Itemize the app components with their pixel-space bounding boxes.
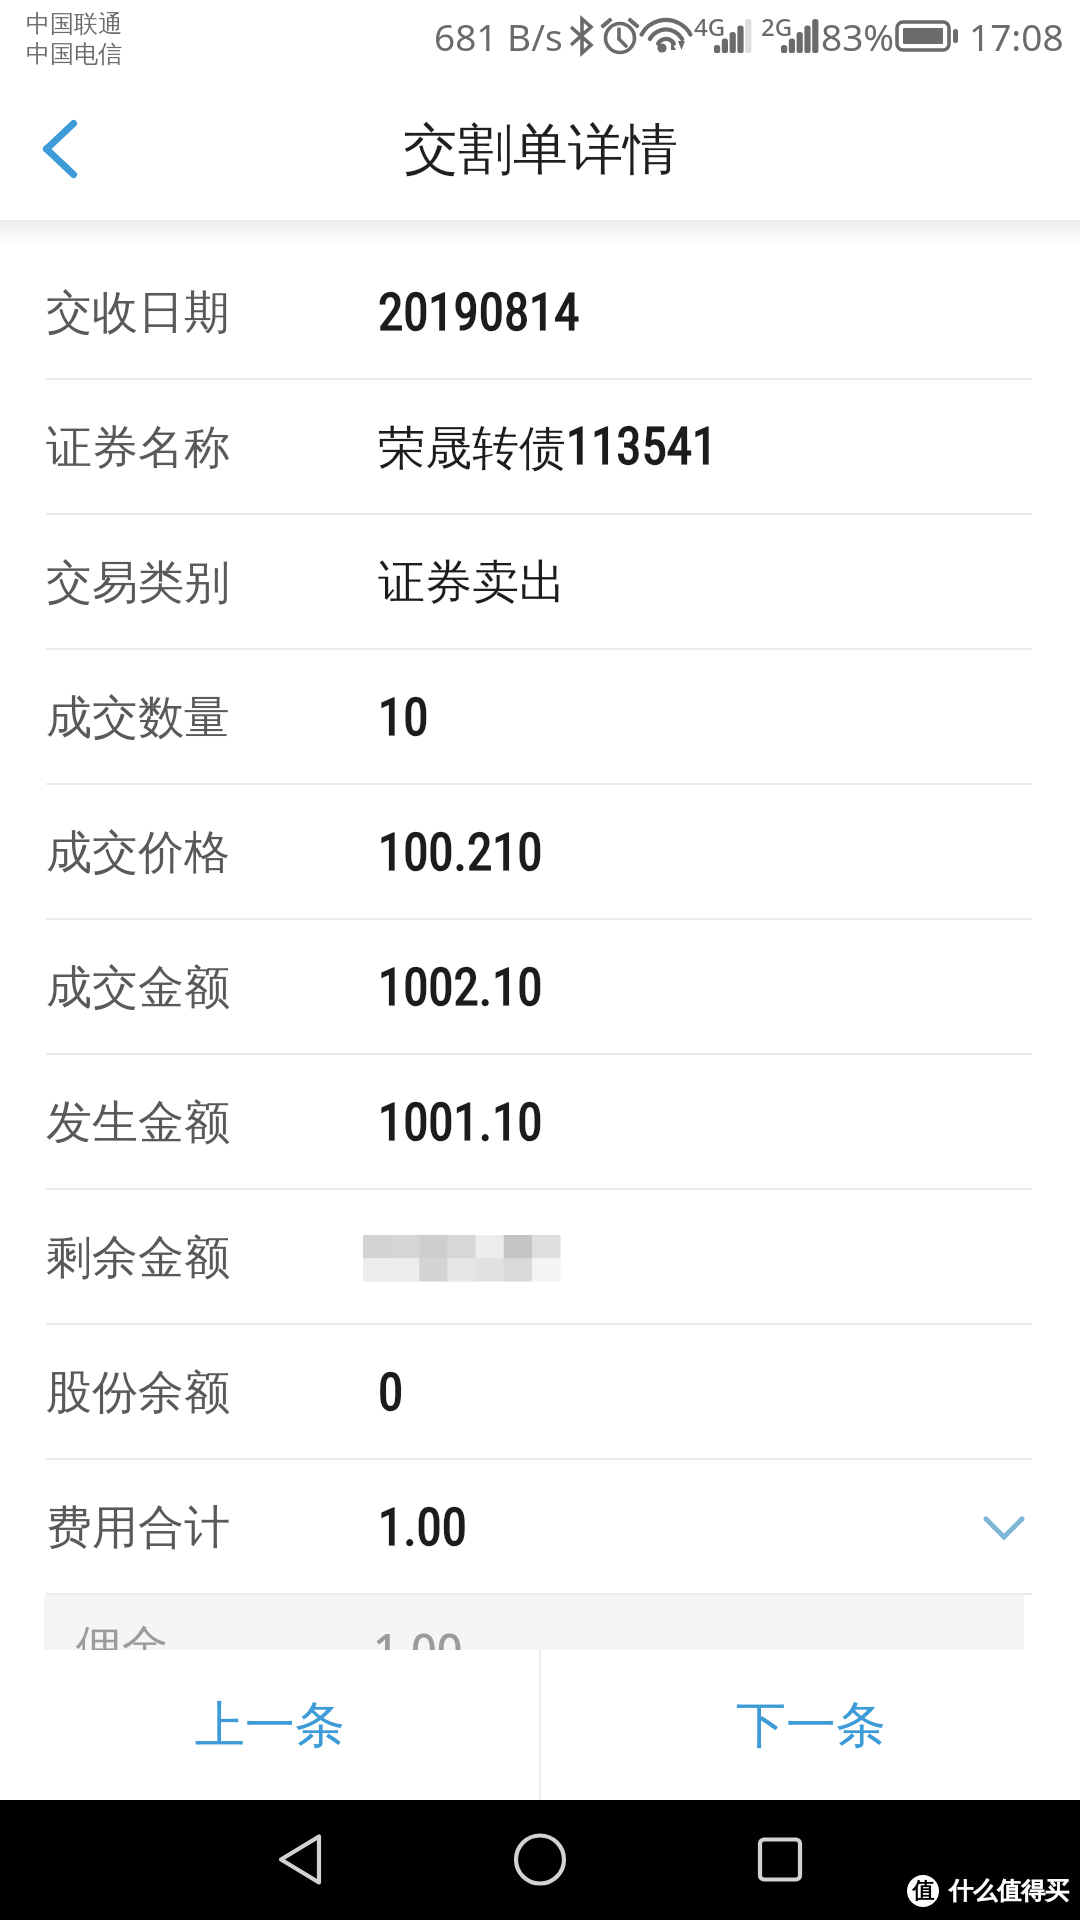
button[interactable]: Home	[499, 1820, 579, 1900]
staticText: 发生金额	[46, 1094, 230, 1152]
staticText: 成交金额	[46, 959, 230, 1017]
staticText: 1.00	[373, 1619, 463, 1674]
button[interactable]: 交易类别	[0, 515, 1080, 650]
staticText: 中国电信	[26, 39, 122, 69]
staticText: 83%	[821, 11, 895, 61]
button[interactable]: 股份余额	[0, 1325, 1080, 1460]
button[interactable]: 交收日期	[0, 245, 1080, 380]
button[interactable]: 证券名称	[0, 380, 1080, 515]
staticText: 中国联通	[26, 9, 122, 39]
button[interactable]: Back	[0, 89, 120, 209]
staticText: 1001.10	[378, 1093, 543, 1153]
staticText: 2G	[761, 10, 793, 43]
button[interactable]: Recents	[738, 1820, 818, 1900]
staticText: 681 B/s	[434, 11, 563, 61]
staticText: 费用合计	[46, 1499, 230, 1557]
staticText: 成交价格	[46, 824, 230, 882]
staticText: 交易类别	[46, 554, 230, 612]
staticText: 荣晟转债113541	[378, 417, 718, 478]
button[interactable]: 成交数量	[0, 650, 1080, 785]
staticText: 100.210	[378, 823, 543, 883]
staticText: 20190814	[378, 283, 580, 343]
button[interactable]: 成交价格	[0, 785, 1080, 920]
button[interactable]: 费用合计	[0, 1460, 1080, 1595]
staticText: 证券名称	[46, 419, 230, 477]
staticText: 值	[912, 1877, 934, 1905]
staticText: 上一条	[195, 1694, 345, 1757]
staticText: 证券卖出	[378, 553, 566, 612]
staticText: 股份余额	[46, 1364, 230, 1422]
button[interactable]: 上一条	[0, 1650, 539, 1800]
staticText: 什么值得买	[949, 1876, 1069, 1906]
staticText: 下一条	[736, 1694, 886, 1757]
button[interactable]: 下一条	[541, 1650, 1080, 1800]
staticText: 成交数量	[46, 689, 230, 747]
button[interactable]: Back	[262, 1820, 342, 1900]
staticText: 佣金	[76, 1619, 168, 1674]
button[interactable]: 剩余金额	[0, 1190, 1080, 1325]
button[interactable]: 成交金额	[0, 920, 1080, 1055]
button[interactable]: 发生金额	[0, 1055, 1080, 1190]
staticText: 1.00	[378, 1498, 467, 1558]
staticText: 17:08	[969, 11, 1064, 61]
staticText: 剩余金额	[46, 1229, 230, 1287]
staticText: 交割单详情	[403, 115, 678, 184]
staticText: 10	[378, 688, 429, 748]
button[interactable]: Expand fee details	[954, 1478, 1054, 1578]
staticText: 0	[378, 1363, 404, 1423]
staticText: 4G	[694, 10, 726, 43]
staticText: 交收日期	[46, 284, 230, 342]
staticText: 1002.10	[378, 958, 543, 1018]
